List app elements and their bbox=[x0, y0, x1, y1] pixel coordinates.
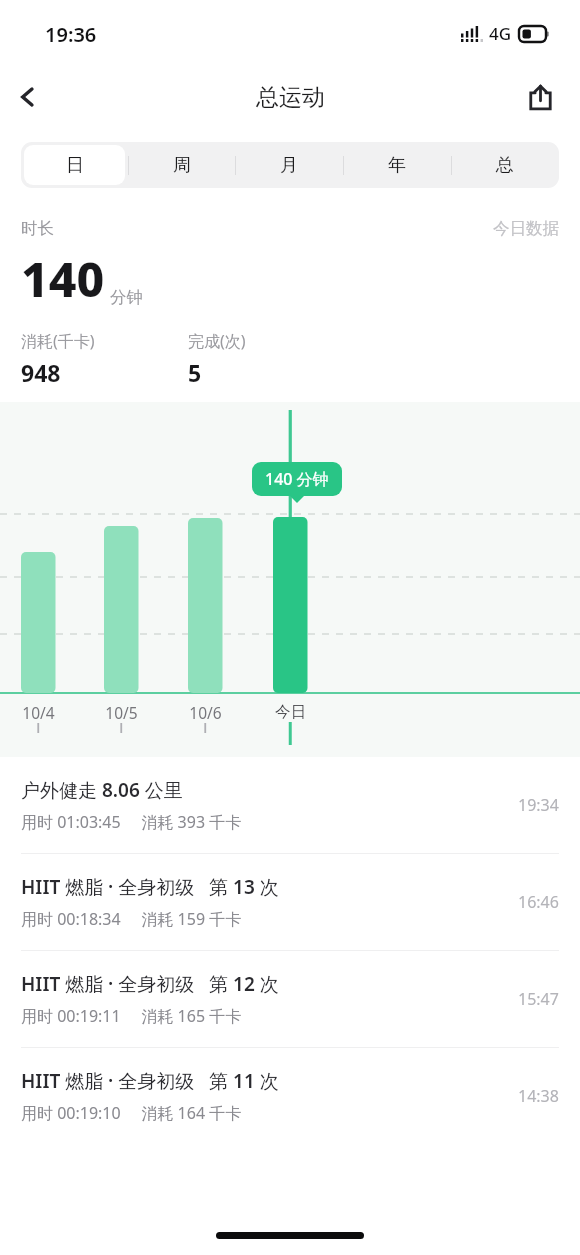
staticText: HIIT 燃脂 · 全身初级 第 12 次 bbox=[21, 971, 279, 997]
staticText: 总 bbox=[496, 154, 514, 177]
staticText: 今日 bbox=[275, 702, 306, 722]
staticText: 140 分钟 bbox=[265, 468, 329, 490]
button[interactable]: 总 bbox=[451, 142, 559, 188]
staticText: 10/4 bbox=[22, 702, 55, 723]
staticText: 10/5 bbox=[105, 702, 138, 723]
button[interactable]: 户外健走 8.06 公里 bbox=[0, 757, 580, 854]
staticText: 16:46 bbox=[518, 891, 559, 913]
staticText: 5 bbox=[188, 357, 202, 388]
staticText: 140 bbox=[21, 246, 105, 311]
button[interactable]: Share bbox=[514, 71, 566, 123]
staticText: 用时 00:19:11 消耗 165 千卡 bbox=[21, 1005, 242, 1027]
staticText: 19:34 bbox=[518, 794, 559, 816]
staticText: 10/6 bbox=[189, 702, 222, 723]
staticText: HIIT 燃脂 · 全身初级 第 11 次 bbox=[21, 1068, 279, 1094]
staticText: 户外健走 8.06 公里 bbox=[21, 777, 183, 803]
button[interactable]: 周 bbox=[128, 142, 235, 188]
staticText: HIIT 燃脂 · 全身初级 第 13 次 bbox=[21, 874, 279, 900]
staticText: 14:38 bbox=[518, 1085, 559, 1107]
staticText: 19:36 bbox=[45, 21, 97, 48]
staticText: 用时 01:03:45 消耗 393 千卡 bbox=[21, 811, 242, 833]
staticText: 总运动 bbox=[256, 83, 325, 112]
staticText: 年 bbox=[388, 154, 406, 177]
staticText: 周 bbox=[173, 154, 191, 177]
staticText: 消耗(千卡) bbox=[21, 330, 95, 352]
staticText: 用时 00:19:10 消耗 164 千卡 bbox=[21, 1102, 242, 1124]
button[interactable]: HIIT 燃脂 · 全身初级 第 12 次 bbox=[0, 951, 580, 1048]
staticText: 4G bbox=[489, 22, 512, 45]
staticText: 日 bbox=[66, 154, 84, 177]
staticText: 月 bbox=[280, 154, 298, 177]
button[interactable]: 年 bbox=[343, 142, 451, 188]
staticText: 用时 00:18:34 消耗 159 千卡 bbox=[21, 908, 242, 930]
staticText: 分钟 bbox=[110, 287, 143, 308]
button[interactable]: 日 bbox=[21, 142, 128, 188]
staticText: 时长 bbox=[21, 218, 54, 239]
staticText: 完成(次) bbox=[188, 330, 246, 352]
button[interactable]: Back bbox=[0, 69, 56, 125]
staticText: 15:47 bbox=[518, 988, 559, 1010]
staticText: 948 bbox=[21, 357, 61, 388]
button[interactable]: 今日数据 bbox=[493, 218, 559, 239]
button[interactable]: 月 bbox=[235, 142, 343, 188]
button[interactable]: HIIT 燃脂 · 全身初级 第 11 次 bbox=[0, 1048, 580, 1144]
button[interactable]: HIIT 燃脂 · 全身初级 第 13 次 bbox=[0, 854, 580, 951]
